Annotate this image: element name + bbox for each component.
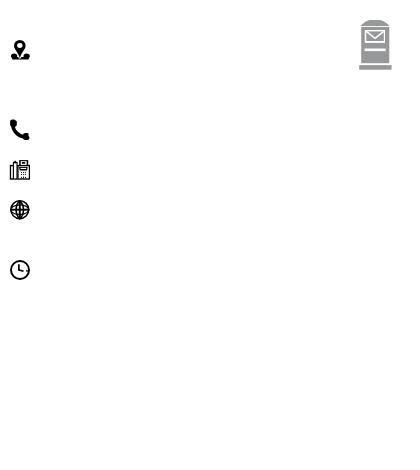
button[interactable]: Address: [10, 39, 31, 60]
button[interactable]: Website: [9, 199, 31, 221]
button[interactable]: Opening hours: [9, 259, 31, 281]
button[interactable]: Fax: [9, 159, 31, 181]
button[interactable]: Mail: [358, 19, 392, 71]
button[interactable]: Phone: [10, 119, 31, 140]
